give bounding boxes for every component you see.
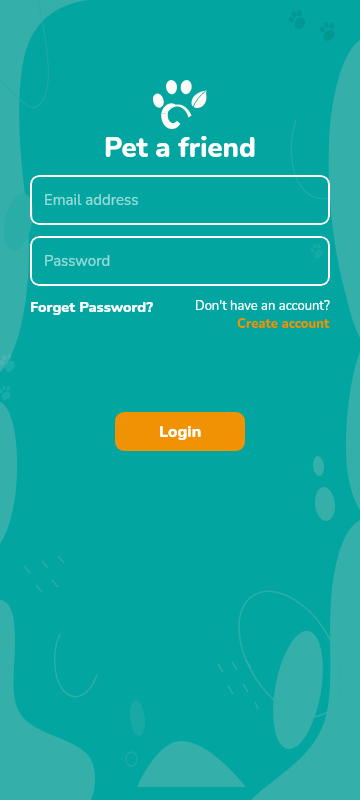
staticText: Password bbox=[44, 251, 111, 271]
staticText: Pet a friend bbox=[104, 129, 256, 167]
button[interactable]: Forget Password? bbox=[30, 297, 153, 317]
button[interactable]: Login bbox=[115, 412, 245, 451]
staticText: Login bbox=[159, 421, 202, 443]
button[interactable]: Email address bbox=[30, 175, 330, 225]
staticText: Forget Password? bbox=[30, 297, 153, 317]
staticText: Email address bbox=[44, 190, 139, 210]
staticText: Don't have an account? bbox=[195, 297, 330, 315]
button[interactable]: Password bbox=[30, 236, 330, 286]
button[interactable]: Create account bbox=[237, 315, 330, 333]
staticText: Create account bbox=[237, 315, 330, 333]
